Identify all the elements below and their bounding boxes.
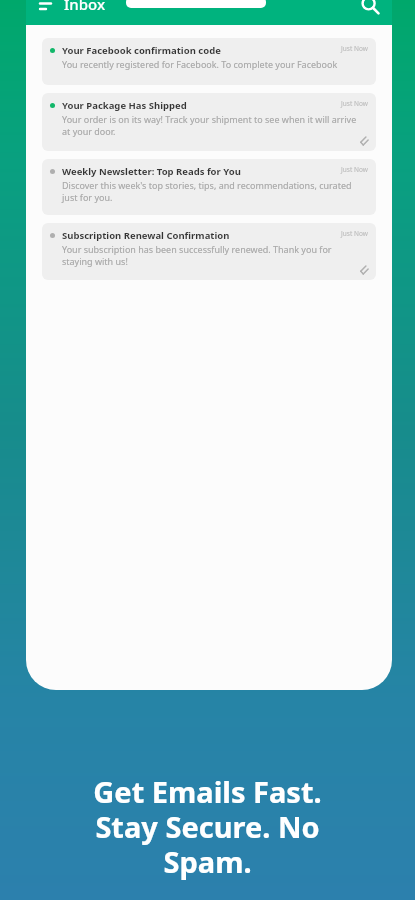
staticText: Your order is on its way! Track your shi… — [62, 113, 362, 138]
staticText: Inbox — [64, 0, 106, 14]
staticText: Your Facebook confirmation code — [62, 44, 221, 57]
button[interactable]: Search field — [126, 0, 266, 8]
staticText: Just Now — [341, 99, 368, 108]
button[interactable]: Subscription Renewal Confirmation — [42, 223, 376, 280]
staticText: Just Now — [341, 44, 368, 53]
staticText: Just Now — [341, 165, 368, 174]
staticText: Discover this week's top stories, tips, … — [62, 179, 362, 204]
staticText: Get Emails Fast. Stay Secure. No Spam. — [93, 772, 322, 882]
button[interactable]: Weekly Newsletter: Top Reads for You — [42, 159, 376, 215]
other: Attachment — [358, 264, 369, 275]
button[interactable]: Search — [360, 0, 380, 15]
staticText: Your subscription has been successfully … — [62, 243, 362, 268]
staticText: Your Package Has Shipped — [62, 99, 187, 112]
staticText: You recently registered for Facebook. To… — [62, 58, 338, 70]
button[interactable]: Menu — [36, 2, 58, 24]
other: Attachment — [358, 135, 369, 146]
staticText: Just Now — [341, 229, 368, 238]
staticText: Weekly Newsletter: Top Reads for You — [62, 165, 241, 178]
button[interactable]: Your Package Has Shipped — [42, 93, 376, 151]
staticText: Subscription Renewal Confirmation — [62, 229, 230, 242]
button[interactable]: Your Facebook confirmation code — [42, 38, 376, 85]
